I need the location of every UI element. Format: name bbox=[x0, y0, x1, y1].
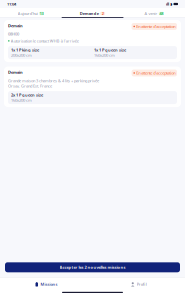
staticText: 11:04 bbox=[7, 1, 16, 7]
button[interactable]: Missions bbox=[0, 278, 92, 291]
staticText: 160x200 cm bbox=[94, 52, 115, 58]
staticText: Demain bbox=[8, 23, 23, 28]
staticText: 2 bbox=[102, 11, 104, 16]
staticText: 48 bbox=[159, 11, 163, 16]
staticText: ◗ bbox=[170, 2, 172, 6]
staticText: A venir bbox=[144, 11, 157, 16]
staticText: Orsay, Grand Est, France bbox=[8, 83, 52, 89]
staticText: En attente d'acceptation bbox=[136, 70, 175, 76]
staticText: Profil bbox=[137, 282, 147, 287]
staticText: 1x 1 P queen size bbox=[94, 47, 126, 52]
staticText: Aujourd'hui bbox=[18, 11, 38, 16]
staticText: Grande maison 3 chambres & 4 lits + park… bbox=[8, 78, 99, 83]
staticText: 200x200 cm bbox=[11, 52, 32, 58]
staticText: 1x 1 P king size bbox=[11, 47, 39, 52]
button[interactable]: A venir bbox=[123, 10, 185, 17]
staticText: Autorisation le contact WHB à l'arrivée bbox=[11, 38, 79, 43]
staticText: ıll bbox=[166, 1, 169, 7]
button[interactable]: Demande bbox=[62, 10, 123, 17]
staticText: 160x200 cm bbox=[11, 98, 32, 103]
button[interactable]: Aujourd'hui bbox=[0, 10, 62, 17]
staticText: Accepter les 2 nouvelles missions bbox=[59, 265, 125, 270]
staticText: Demande bbox=[80, 11, 99, 16]
staticText: En attente d'acceptation bbox=[136, 24, 175, 29]
button[interactable]: Profil bbox=[92, 278, 185, 291]
staticText: 13 bbox=[39, 11, 43, 16]
staticText: 2x 1 P queen size bbox=[11, 92, 43, 98]
staticText: Missions bbox=[40, 282, 57, 287]
button[interactable]: Accepter les 2 nouvelles missions bbox=[5, 262, 180, 272]
staticText: 08H00 bbox=[8, 31, 19, 37]
staticText: Demain bbox=[8, 69, 23, 75]
